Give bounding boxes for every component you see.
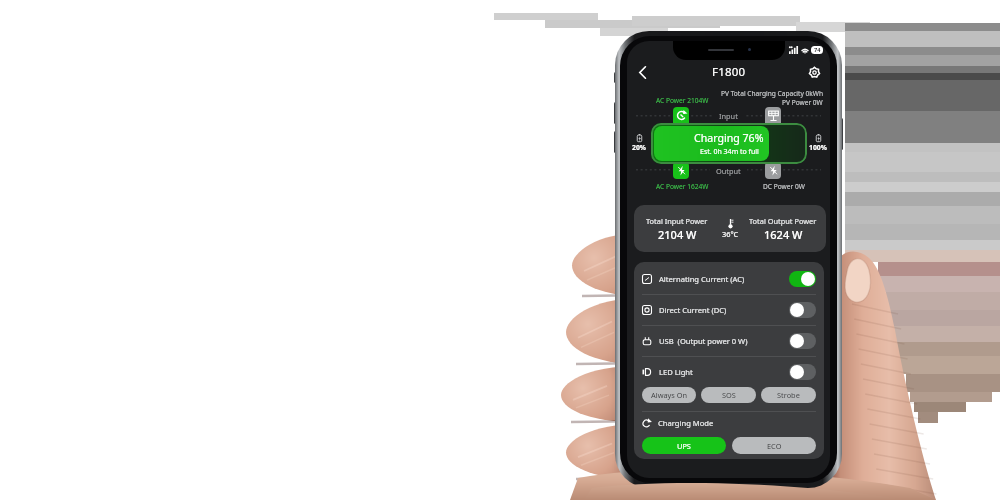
button[interactable]: Direct Current (DC) xyxy=(642,295,816,325)
staticText: PV Total Charging Capacity 0kWh xyxy=(721,89,823,98)
staticText: 36°C xyxy=(722,229,739,239)
staticText: Direct Current (DC) xyxy=(659,305,727,315)
staticText: SOS xyxy=(722,390,736,400)
staticText: Input xyxy=(719,111,738,121)
staticText: 1624 W xyxy=(764,227,803,242)
staticText: AC Power 1624W xyxy=(656,182,709,191)
staticText: 20% xyxy=(632,143,646,152)
button[interactable]: Strobe xyxy=(761,387,816,403)
staticText: 2104 W xyxy=(658,227,697,242)
staticText: 100% xyxy=(809,143,827,152)
staticText: AC Power 2104W xyxy=(656,96,709,105)
staticText: Output xyxy=(716,166,741,176)
staticText: USB (Output power 0 W) xyxy=(659,336,748,346)
staticText: DC Power 0W xyxy=(763,182,805,191)
staticText: F1800 xyxy=(712,64,746,80)
button[interactable]: ECO xyxy=(732,437,816,454)
staticText: Alternating Current (AC) xyxy=(659,274,745,284)
staticText: Always On xyxy=(651,390,688,400)
button[interactable]: Charging 76% xyxy=(651,123,807,164)
button[interactable]: Solar input xyxy=(765,107,781,124)
button[interactable]: AC input xyxy=(673,107,689,124)
button[interactable]: Settings xyxy=(803,61,825,83)
staticText: Total Output Power xyxy=(749,216,817,226)
button[interactable]: UPS xyxy=(642,437,726,454)
button[interactable]: Back xyxy=(631,61,653,83)
staticText: UPS xyxy=(677,441,691,451)
staticText: Charging 76% xyxy=(694,131,764,145)
staticText: PV Power 0W xyxy=(782,98,823,107)
button[interactable]: SOS xyxy=(701,387,756,403)
staticText: 74 xyxy=(814,46,821,54)
button[interactable]: Total Input Power xyxy=(634,205,826,252)
button[interactable]: DC output xyxy=(765,162,781,179)
staticText: Charging Mode xyxy=(658,418,714,428)
button[interactable]: LED Light xyxy=(642,357,816,387)
staticText: ECO xyxy=(767,441,782,451)
button[interactable]: USB (Output power 0 W) xyxy=(642,326,816,356)
button[interactable]: AC output xyxy=(673,162,689,179)
staticText: Total Input Power xyxy=(646,216,708,226)
staticText: Strobe xyxy=(777,390,800,400)
button[interactable]: Alternating Current (AC) xyxy=(642,264,816,294)
button[interactable]: Always On xyxy=(642,387,696,403)
staticText: LED Light xyxy=(659,367,693,377)
staticText: Est. 0h 34m to full xyxy=(700,147,759,157)
